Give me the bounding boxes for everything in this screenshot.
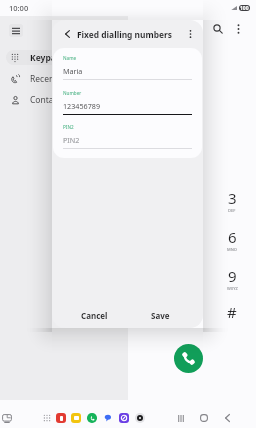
staticText: #: [227, 302, 237, 320]
button[interactable]: 3: [215, 188, 249, 214]
staticText: MNO: [227, 247, 237, 252]
button[interactable]: DeX mode: [0, 412, 13, 425]
button[interactable]: Messages: [101, 411, 115, 425]
button[interactable]: Home: [197, 411, 211, 425]
button[interactable]: Name: [63, 53, 192, 85]
button[interactable]: Recents: [6, 71, 122, 86]
staticText: Recents: [30, 73, 62, 85]
button[interactable]: All apps: [40, 411, 54, 425]
staticText: Cancel: [81, 310, 108, 321]
staticText: WXYZ: [227, 286, 238, 291]
button[interactable]: 9: [215, 266, 249, 292]
staticText: 10:00: [9, 3, 29, 13]
button[interactable]: #: [215, 302, 249, 328]
button[interactable]: Contacts: [6, 92, 122, 107]
staticText: Maria: [63, 66, 83, 76]
button[interactable]: Gallery: [69, 411, 83, 425]
staticText: 9: [228, 266, 237, 284]
staticText: Number: [63, 90, 82, 96]
button[interactable]: Phone: [85, 411, 99, 425]
button[interactable]: Camera: [133, 411, 147, 425]
button[interactable]: Navigation menu: [9, 24, 23, 37]
staticText: DEF: [228, 208, 236, 213]
button[interactable]: Number: [63, 88, 192, 120]
button[interactable]: Save: [127, 305, 193, 325]
staticText: Name: [63, 55, 77, 61]
staticText: 6: [228, 227, 237, 245]
button[interactable]: More options: [228, 19, 248, 39]
button[interactable]: Keypad: [6, 50, 122, 65]
button[interactable]: Cancel: [62, 305, 127, 325]
staticText: 3: [228, 188, 237, 206]
button[interactable]: Back: [220, 411, 234, 425]
staticText: PIN2: [63, 124, 74, 130]
button[interactable]: Recent apps: [174, 411, 188, 425]
staticText: Save: [151, 310, 170, 321]
button[interactable]: PIN2: [63, 122, 192, 154]
staticText: PIN2: [63, 135, 80, 145]
button[interactable]: More options: [183, 24, 197, 44]
button[interactable]: Samsung Notes: [54, 411, 68, 425]
staticText: Keypad: [30, 52, 62, 64]
button[interactable]: 6: [215, 227, 249, 253]
button[interactable]: Call: [174, 344, 203, 373]
button[interactable]: Search: [208, 19, 228, 39]
staticText: Fixed dialling numbers: [77, 29, 172, 40]
staticText: 100: [240, 5, 249, 11]
staticText: Contacts: [30, 94, 65, 106]
button[interactable]: Back: [60, 24, 74, 44]
staticText: 123456789: [63, 101, 101, 111]
button[interactable]: Internet: [117, 411, 131, 425]
